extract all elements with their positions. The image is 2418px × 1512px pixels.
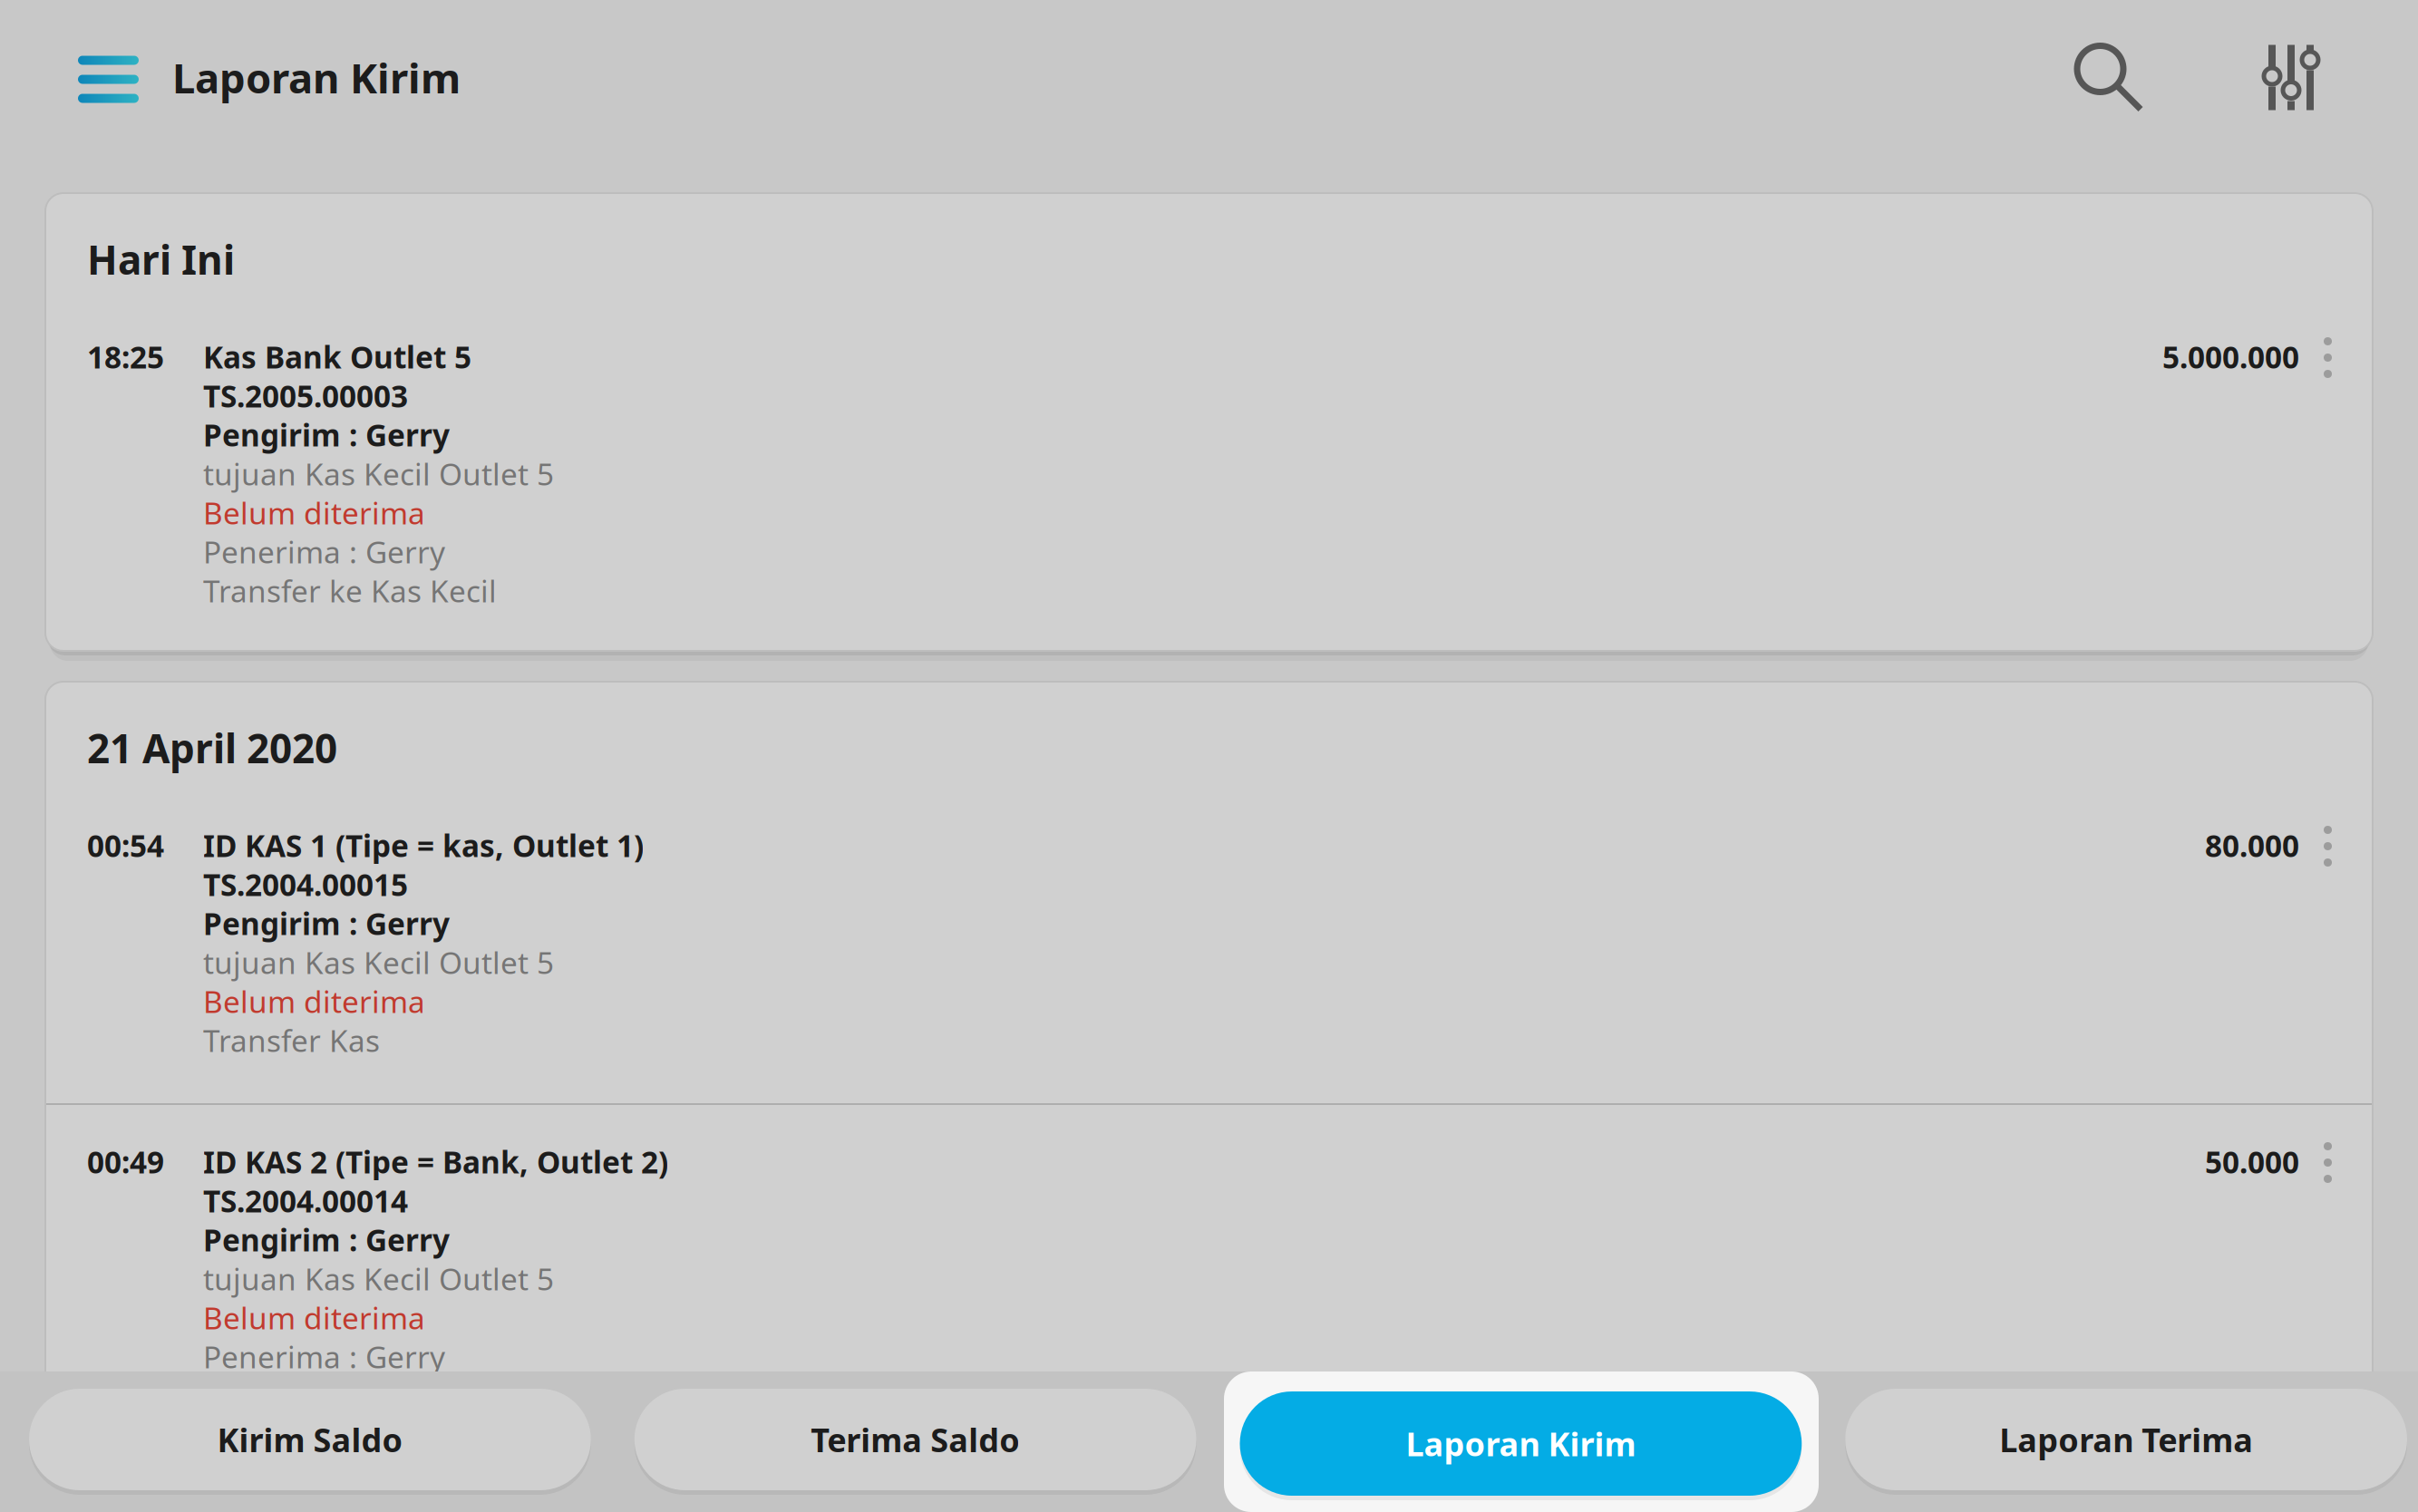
button[interactable]: Search	[2048, 20, 2170, 135]
staticText: 50.000	[2205, 1142, 2299, 1182]
staticText: tujuan Kas Kecil Outlet 5	[203, 454, 554, 494]
staticText: Belum diterima	[203, 493, 425, 533]
staticText: ID KAS 2 (Tipe = Bank, Outlet 2)	[203, 1142, 668, 1182]
staticText: ID KAS 1 (Tipe = kas, Outlet 1)	[203, 825, 644, 865]
button[interactable]: More options	[2299, 284, 2373, 419]
staticText: TS.2005.00003	[203, 376, 408, 416]
staticText: Belum diterima	[203, 1298, 425, 1338]
staticText: Transfer Kas	[203, 1375, 380, 1416]
staticText: Laporan Terima	[1999, 1418, 2253, 1461]
staticText: 18:25	[87, 337, 164, 377]
button[interactable]: 18:25	[45, 284, 2299, 651]
staticText: tujuan Kas Kecil Outlet 5	[203, 942, 554, 982]
staticText: Hari Ini	[87, 233, 235, 286]
staticText: Laporan Kirim	[1406, 1422, 1636, 1465]
staticText: TS.2004.00015	[203, 864, 408, 904]
staticText: 80.000	[2205, 825, 2299, 865]
button[interactable]: Laporan Terima	[1845, 1371, 2407, 1512]
staticText: Pengirim : Gerry	[203, 903, 450, 943]
staticText: TS.2004.00014	[203, 1181, 408, 1221]
staticText: Laporan Kirim	[172, 50, 461, 105]
button[interactable]: Filter	[2170, 19, 2418, 136]
button[interactable]: Kirim Saldo	[29, 1371, 591, 1512]
button[interactable]: More options	[2299, 1105, 2373, 1224]
button[interactable]: More options	[2299, 772, 2373, 910]
staticText: Kas Bank Outlet 5	[203, 337, 471, 377]
staticText: Pengirim : Gerry	[203, 415, 450, 455]
staticText: Terima Saldo	[811, 1418, 1020, 1461]
button[interactable]: Terima Saldo	[634, 1371, 1196, 1512]
staticText: 5.000.000	[2162, 337, 2299, 377]
staticText: Transfer Kas	[203, 1020, 380, 1060]
button[interactable]: 00:54	[45, 772, 2299, 1103]
staticText: Penerima : Gerry	[203, 1337, 445, 1377]
staticText: 21 April 2020	[87, 721, 337, 774]
button[interactable]: Laporan Kirim	[1240, 1371, 1802, 1512]
staticText: 00:54	[87, 825, 164, 865]
staticText: Belum diterima	[203, 981, 425, 1021]
staticText: tujuan Kas Kecil Outlet 5	[203, 1259, 554, 1299]
staticText: 00:49	[87, 1142, 164, 1182]
button[interactable]: 00:49	[45, 1105, 2299, 1456]
staticText: Penerima : Gerry	[203, 532, 445, 572]
button[interactable]: Menu	[0, 27, 172, 128]
staticText: Pengirim : Gerry	[203, 1220, 450, 1260]
staticText: Transfer ke Kas Kecil	[203, 571, 497, 611]
staticText: Kirim Saldo	[217, 1418, 403, 1461]
